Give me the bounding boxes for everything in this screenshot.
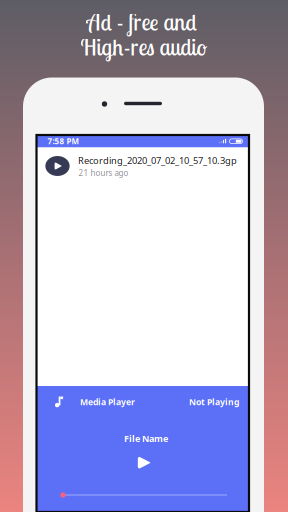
staticText: File Name: [124, 432, 168, 445]
button[interactable]: Play: [132, 452, 156, 474]
button[interactable]: Media Player: [77, 392, 138, 412]
staticText: 21 hours ago: [78, 168, 128, 178]
button[interactable]: Not Playing: [186, 392, 242, 412]
staticText: Recording_2020_07_02_10_57_10.3gp: [78, 154, 237, 167]
button[interactable]: Recording_2020_07_02_10_57_10.3gp: [36, 147, 249, 187]
staticText: 7:58 PM: [47, 136, 79, 147]
staticText: Ad - free and: [86, 8, 196, 36]
staticText: Not Playing: [189, 396, 239, 408]
staticText: Media Player: [80, 396, 135, 408]
staticText: High-res audio: [80, 33, 207, 61]
